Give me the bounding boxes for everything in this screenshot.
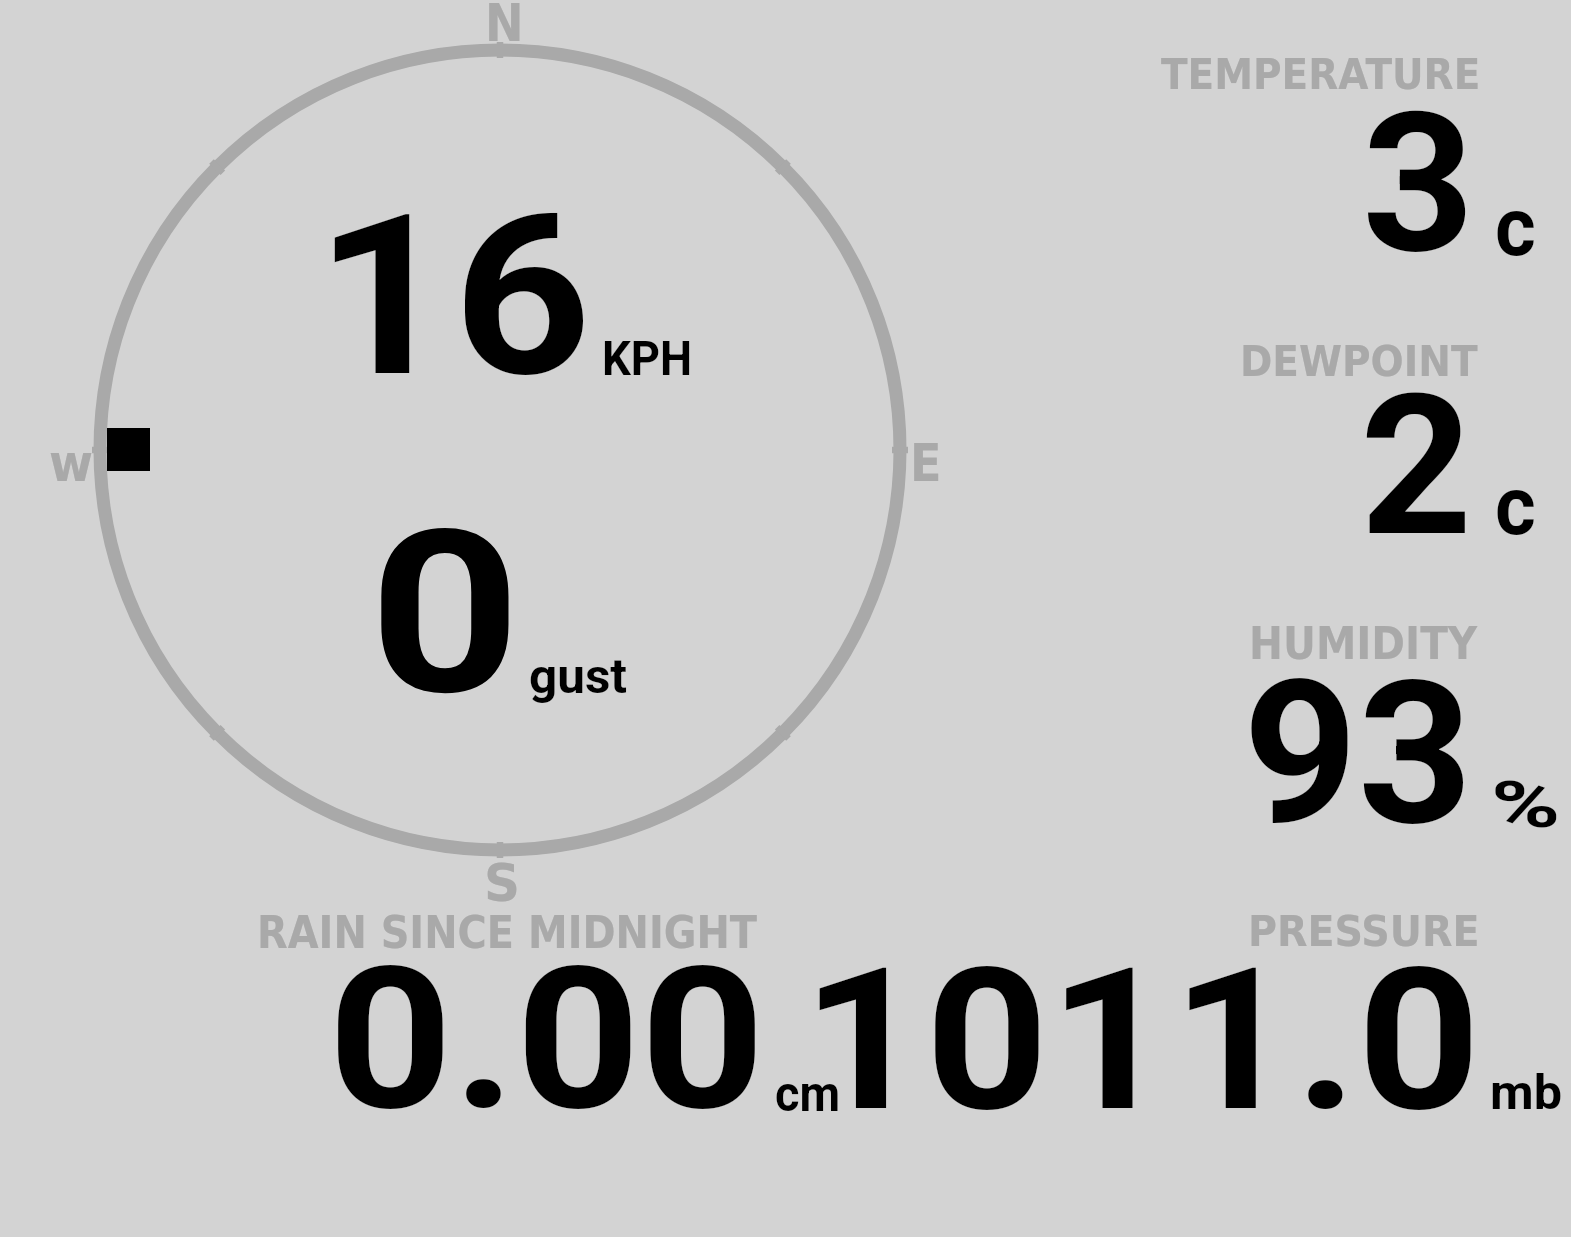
staticText: % [1491, 767, 1561, 842]
staticText: 2 [1360, 353, 1473, 581]
staticText: 1011.0 [802, 925, 1482, 1156]
button[interactable]: Dewpoint 2 c [1140, 335, 1560, 535]
staticText: c [1495, 458, 1536, 554]
button[interactable]: Wind speed 16 KPH, gust 0 [300, 190, 720, 710]
staticText: KPH [602, 331, 693, 387]
button[interactable]: Humidity 93 % [1140, 618, 1560, 828]
staticText: HUMIDITY [1249, 618, 1477, 670]
button[interactable]: Rain since midnight 0.00 cm [250, 905, 850, 1115]
staticText: PRESSURE [1248, 906, 1480, 956]
staticText: 0.00 [328, 925, 765, 1155]
staticText: 93 [1243, 638, 1473, 871]
staticText: DEWPOINT [1240, 336, 1478, 386]
staticText: c [1495, 179, 1536, 275]
staticText: gust [529, 648, 627, 705]
staticText: 16 [315, 166, 592, 428]
staticText: w [49, 434, 94, 493]
button[interactable]: Wind direction compass, wind from west [94, 44, 906, 856]
staticText: RAIN SINCE MIDNIGHT [257, 907, 757, 958]
staticText: S [484, 853, 520, 914]
button[interactable]: Pressure 1011.0 mb [860, 905, 1560, 1115]
staticText: E [910, 434, 942, 493]
staticText: 0 [369, 481, 521, 746]
staticText: TEMPERATURE [1161, 49, 1481, 99]
button[interactable]: Temperature 3 c [1140, 50, 1560, 260]
staticText: cm [775, 1065, 841, 1123]
staticText: mb [1490, 1065, 1562, 1121]
staticText: N [485, 0, 524, 53]
staticText: 3 [1362, 71, 1475, 297]
